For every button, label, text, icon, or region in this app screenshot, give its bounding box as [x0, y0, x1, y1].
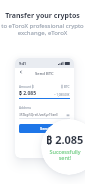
staticText: 9:41: [19, 61, 27, 66]
staticText: ₿ 2.085: [19, 90, 37, 97]
staticText: ₿ 2.085: [46, 132, 84, 147]
staticText: ~ 1,080.00€: [54, 93, 70, 97]
staticText: Address: [19, 106, 32, 110]
staticText: Transfer your cryptos: [5, 11, 80, 21]
staticText: to eToroX professional crypto exchange, …: [1, 22, 84, 37]
button[interactable]: Send: [19, 124, 70, 133]
staticText: Send: [40, 126, 50, 131]
staticText: Amount ₿: [19, 85, 34, 89]
staticText: 3FZbgi5QrstUvwXyz19anE: [19, 113, 58, 117]
staticText: ₿ BTC: [61, 85, 70, 89]
button[interactable]: Back: [17, 68, 25, 76]
staticText: Successfully sent!: [49, 148, 81, 161]
staticText: Send BTC: [35, 71, 54, 77]
button[interactable]: Scan QR code: [65, 112, 70, 117]
